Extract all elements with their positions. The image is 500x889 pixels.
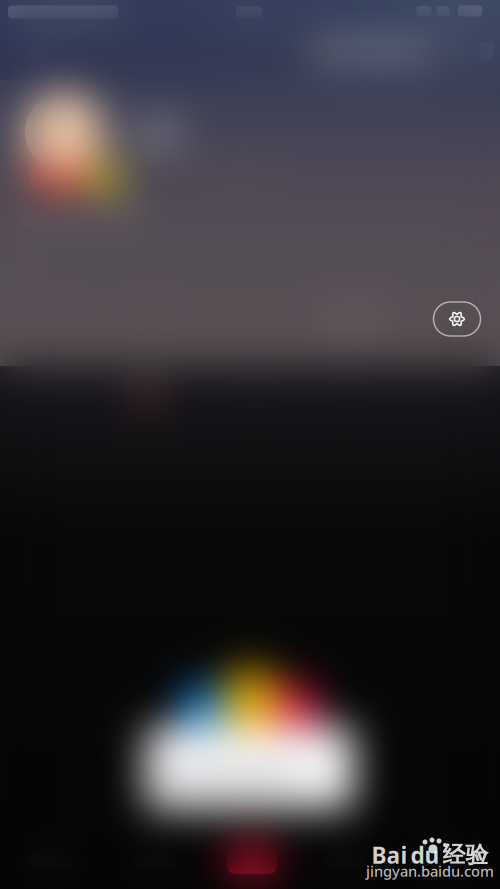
staticText: Bai (371, 840, 407, 870)
staticText: jingyan.baidu.com (366, 861, 494, 881)
staticText: du (410, 840, 439, 870)
staticText: 经验 (442, 841, 488, 869)
button[interactable]: Settings (425, 294, 489, 344)
